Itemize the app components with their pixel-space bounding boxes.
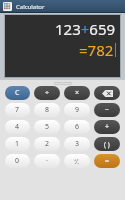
button[interactable]: + (94, 120, 120, 134)
button[interactable]: = (94, 154, 120, 168)
staticText: 9 (75, 105, 80, 115)
button[interactable]: 5 (34, 120, 60, 134)
button[interactable]: 7 (5, 103, 30, 117)
button[interactable]: C (5, 86, 30, 100)
button[interactable]: 0 (5, 154, 30, 168)
button[interactable]: 6 (64, 120, 90, 134)
staticText: =782 (79, 40, 114, 60)
button[interactable]: 8 (34, 103, 60, 117)
button[interactable]: · (34, 154, 60, 168)
button[interactable]: ÷ (34, 86, 60, 100)
staticText: ÷ (45, 88, 50, 98)
staticText: = (105, 156, 110, 166)
staticText: ( ) (104, 140, 110, 149)
button[interactable]: × (64, 86, 90, 100)
staticText: − (105, 105, 110, 115)
staticText: C (15, 88, 20, 98)
button[interactable]: 2 (34, 137, 60, 151)
staticText: 6 (75, 122, 80, 132)
button[interactable]: 1 (5, 137, 30, 151)
button[interactable]: ( ) (94, 137, 120, 151)
staticText: 2 (45, 139, 50, 149)
staticText: 0 (15, 156, 20, 166)
button[interactable]: Backspace (94, 86, 120, 100)
staticText: 3 (75, 139, 80, 149)
button[interactable]: − (94, 103, 120, 117)
staticText: 8 (45, 105, 50, 115)
staticText: · (46, 156, 48, 166)
staticText: + (105, 122, 110, 132)
staticText: Calculator (16, 3, 45, 11)
staticText: 1 (15, 139, 20, 149)
button[interactable]: 4 (5, 120, 30, 134)
button[interactable]: 3 (64, 137, 90, 151)
staticText: 4 (15, 122, 20, 132)
staticText: × (75, 88, 80, 98)
staticText: 5 (45, 122, 50, 132)
button[interactable]: ⁺⁄₋ (64, 154, 90, 168)
staticText: ⁺⁄₋ (74, 157, 80, 166)
staticText: 123+659 (55, 19, 116, 39)
button[interactable]: 9 (64, 103, 90, 117)
staticText: 7 (15, 105, 20, 115)
